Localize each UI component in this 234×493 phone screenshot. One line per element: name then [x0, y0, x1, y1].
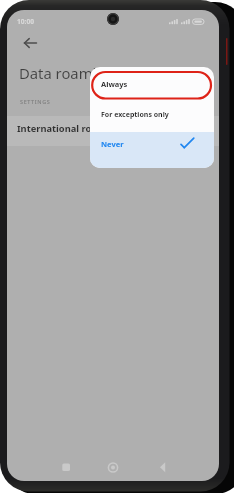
button[interactable]: International roaming: [7, 116, 219, 146]
button[interactable]: Never: [90, 132, 214, 168]
button[interactable]: For exceptions only: [90, 102, 214, 132]
staticText: SETTINGS: [20, 98, 51, 105]
button[interactable]: Always: [90, 67, 214, 102]
staticText: Never: [101, 139, 124, 149]
button[interactable]: [54, 455, 78, 479]
staticText: International roaming: [17, 122, 121, 135]
button[interactable]: [149, 455, 173, 479]
staticText: 10:00: [17, 17, 34, 26]
staticText: Always: [101, 79, 128, 89]
button[interactable]: [19, 32, 41, 54]
staticText: Data roaming: [19, 63, 115, 83]
staticText: For exceptions only: [101, 110, 169, 120]
button[interactable]: [101, 455, 125, 479]
